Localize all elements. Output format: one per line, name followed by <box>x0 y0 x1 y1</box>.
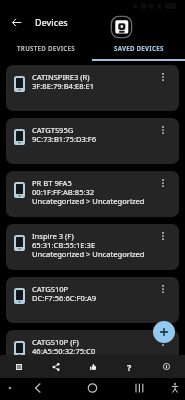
button[interactable]: Share <box>37 355 74 378</box>
staticText: 9C:73:B1:75:D3:F6 <box>32 135 97 144</box>
button[interactable]: Help <box>111 355 148 378</box>
staticText: CATGS10P (F) <box>32 338 79 347</box>
button[interactable]: More options <box>147 65 179 111</box>
button[interactable]: More options <box>147 118 179 164</box>
button[interactable]: Screenshot <box>111 16 132 38</box>
staticText: PR BT 9FA5 <box>32 179 72 188</box>
button[interactable]: Inspire 3 (F) <box>6 224 179 270</box>
staticText: 3F:8E:79:B4:E8:E1 <box>32 82 95 91</box>
staticText: 00:1F:FF:AB:85:32 <box>32 188 95 197</box>
staticText: Inspire 3 (F) <box>32 232 74 241</box>
button[interactable]: More options <box>147 277 179 323</box>
staticText: SAVED DEVICES <box>114 44 164 52</box>
staticText: Uncategorized > Uncategorized <box>32 197 145 206</box>
button[interactable]: PR BT 9FA5 <box>6 171 179 217</box>
button[interactable]: CATINSPIRE3 (R) <box>6 65 179 111</box>
staticText: ? <box>127 361 132 373</box>
staticText: TRUSTED DEVICES <box>17 44 75 52</box>
button[interactable]: More options <box>147 171 179 217</box>
button[interactable]: More options <box>147 330 179 376</box>
button[interactable]: CATGS10P (F) <box>6 330 179 376</box>
staticText: CATINSPIRE3 (R) <box>32 73 90 82</box>
button[interactable]: Like <box>74 355 111 378</box>
button[interactable]: CATGS10P <box>6 277 179 323</box>
button[interactable]: More options <box>147 224 179 270</box>
button[interactable]: SAVED DEVICES <box>92 36 185 60</box>
button[interactable]: Info <box>148 355 185 378</box>
staticText: Devices <box>35 16 68 28</box>
button[interactable]: CATGTS95G <box>6 118 179 164</box>
button[interactable]: Menu <box>0 355 37 378</box>
button[interactable]: Back <box>6 12 26 32</box>
staticText: 46:A5:50:32:75:C0 <box>32 347 96 356</box>
staticText: DC:F7:56:6C:F0:A9 <box>32 294 97 303</box>
staticText: CATGS10P <box>32 285 69 294</box>
button[interactable]: TRUSTED DEVICES <box>0 36 92 60</box>
staticText: CATGTS95G <box>32 126 74 135</box>
staticText: 65:31:CB:55:1E:3E <box>32 241 96 250</box>
button[interactable]: Add device <box>153 321 175 343</box>
staticText: Uncategorized > Uncategorized <box>32 250 145 259</box>
